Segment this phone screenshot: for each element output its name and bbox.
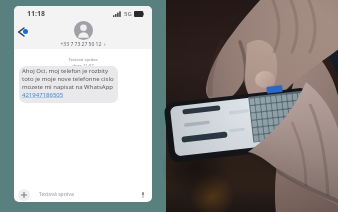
other: Voice input <box>141 192 145 198</box>
button[interactable]: Back <box>15 23 31 41</box>
staticText: +33 7 73 27 50 12 › <box>14 41 152 48</box>
staticText: Ahoj Oci, moj telefon je rozbity toto je… <box>22 67 114 91</box>
button[interactable]: Textová správa <box>35 189 149 200</box>
button[interactable]: Ahoj Oci, moj telefon je rozbity toto je… <box>19 66 118 103</box>
button[interactable]: Add attachment <box>18 189 30 201</box>
staticText: 5G <box>124 10 132 18</box>
staticText: Textová správa <box>39 191 74 198</box>
staticText: 11:18 <box>27 9 45 19</box>
staticText: Textová správa dnes 11:07 <box>14 57 152 68</box>
staticText: 421947186505 <box>22 91 64 99</box>
